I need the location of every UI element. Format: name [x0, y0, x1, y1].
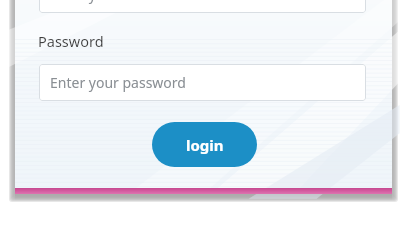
staticText: Enter your password — [50, 73, 186, 92]
staticText: Password — [38, 31, 104, 51]
button[interactable]: Enter your username — [39, 0, 366, 13]
button[interactable]: Password input — [39, 64, 366, 101]
staticText: login — [186, 135, 224, 155]
button[interactable]: login — [152, 122, 257, 167]
staticText: Enter your username — [50, 0, 190, 4]
